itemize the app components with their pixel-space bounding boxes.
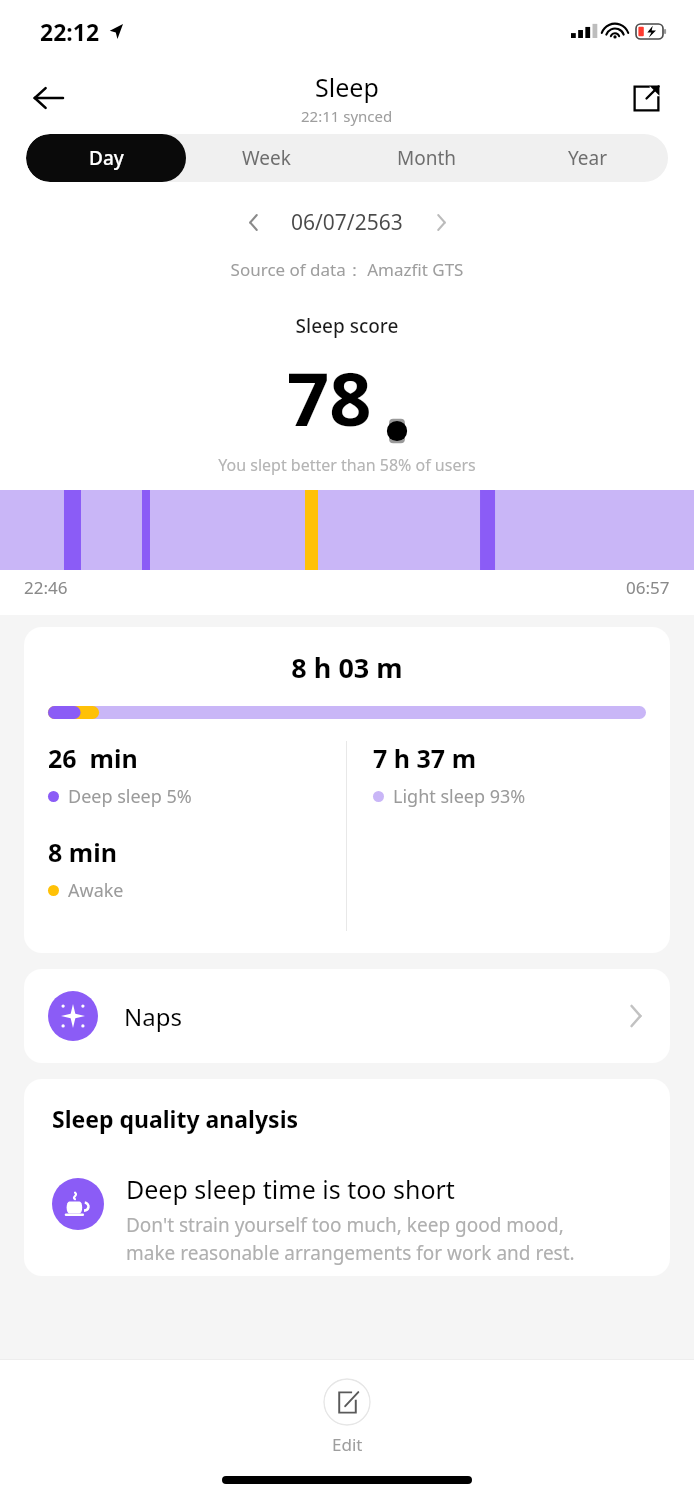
staticText: Light sleep 93% xyxy=(393,784,526,809)
staticText: 22:11 synced xyxy=(301,106,393,126)
staticText: You slept better than 58% of users xyxy=(0,454,694,476)
button[interactable]: Naps xyxy=(24,969,670,1063)
button[interactable]: Edit xyxy=(303,1374,391,1460)
button[interactable]: Share xyxy=(622,74,670,122)
button[interactable]: Back xyxy=(22,72,74,124)
staticText: 8 min xyxy=(48,835,117,869)
button[interactable]: 8 h 03 m xyxy=(24,627,670,953)
button[interactable]: Month xyxy=(346,134,507,182)
staticText: Deep sleep 5% xyxy=(68,784,192,809)
staticText: 8 h 03 m xyxy=(48,649,646,686)
staticText: Day xyxy=(89,145,124,171)
staticText: Week xyxy=(242,145,291,171)
staticText: Year xyxy=(568,145,608,171)
button[interactable]: Week xyxy=(186,134,346,182)
staticText: Awake xyxy=(68,878,124,903)
staticText: Source of data： Amazfit GTS xyxy=(0,258,694,281)
staticText: 22:12 xyxy=(40,16,100,47)
staticText: Naps xyxy=(124,1000,626,1033)
staticText: Edit xyxy=(332,1433,363,1456)
staticText: 78 xyxy=(287,347,372,448)
staticText: 7 h 37 m xyxy=(373,741,477,775)
button[interactable]: Day xyxy=(26,134,186,182)
staticText: Month xyxy=(397,145,457,171)
staticText: 26 min xyxy=(48,741,138,775)
staticText: Don't strain yourself too much, keep goo… xyxy=(126,1212,575,1266)
staticText: 06:57 xyxy=(626,576,670,599)
staticText: Deep sleep time is too short xyxy=(126,1172,455,1206)
button[interactable]: Next day xyxy=(419,200,463,244)
staticText: 22:46 xyxy=(24,576,68,599)
button[interactable]: Year xyxy=(507,134,668,182)
staticText: 06/07/2563 xyxy=(291,208,403,237)
button[interactable]: Sleep quality analysis xyxy=(24,1079,670,1276)
button[interactable]: Previous day xyxy=(231,200,275,244)
staticText: Sleep xyxy=(315,70,379,104)
staticText: Sleep score xyxy=(0,313,694,339)
staticText: Sleep quality analysis xyxy=(52,1103,299,1134)
